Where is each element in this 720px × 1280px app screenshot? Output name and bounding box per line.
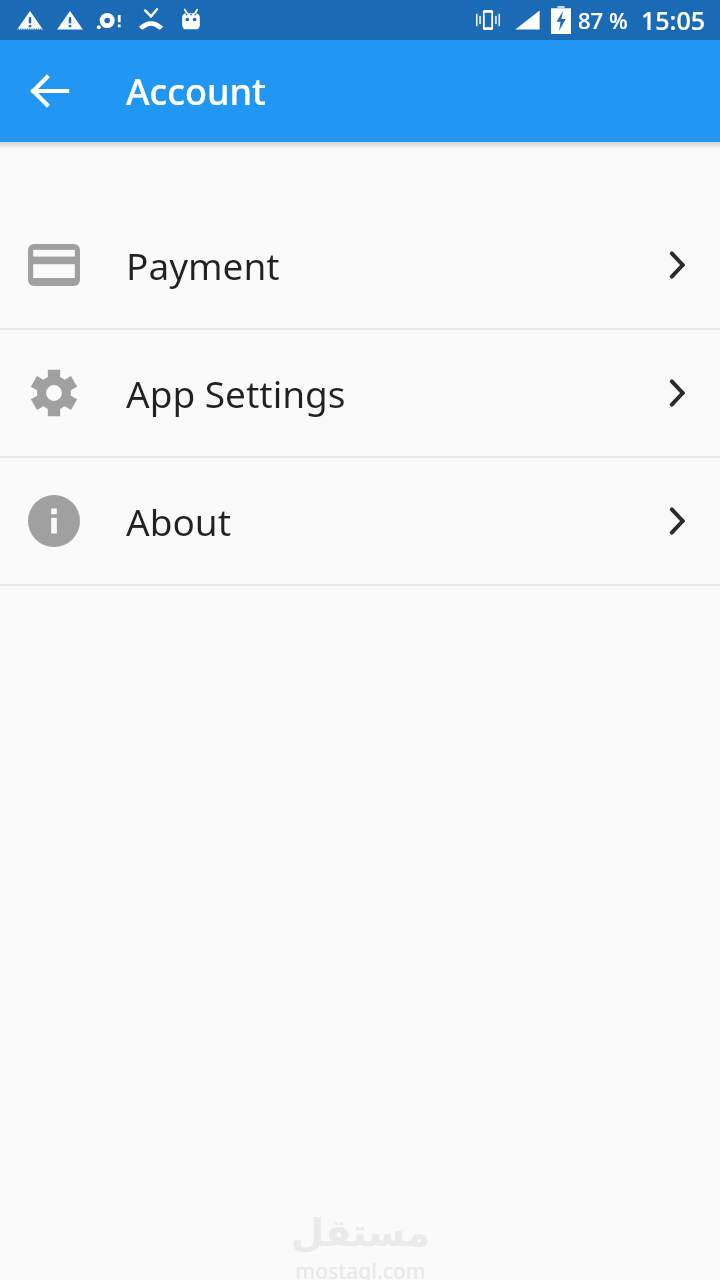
staticText: Payment: [126, 240, 280, 290]
staticText: App Settings: [126, 368, 346, 418]
button[interactable]: App Settings: [0, 330, 720, 456]
button[interactable]: About: [0, 458, 720, 584]
button[interactable]: Payment: [0, 202, 720, 328]
staticText: Account: [126, 67, 266, 116]
staticText: مستقل: [291, 1211, 430, 1255]
staticText: About: [126, 496, 232, 546]
staticText: 87 %: [578, 5, 628, 35]
button[interactable]: Back: [18, 59, 82, 123]
staticText: 15:05: [641, 3, 706, 37]
staticText: mostaql.com: [295, 1257, 426, 1280]
